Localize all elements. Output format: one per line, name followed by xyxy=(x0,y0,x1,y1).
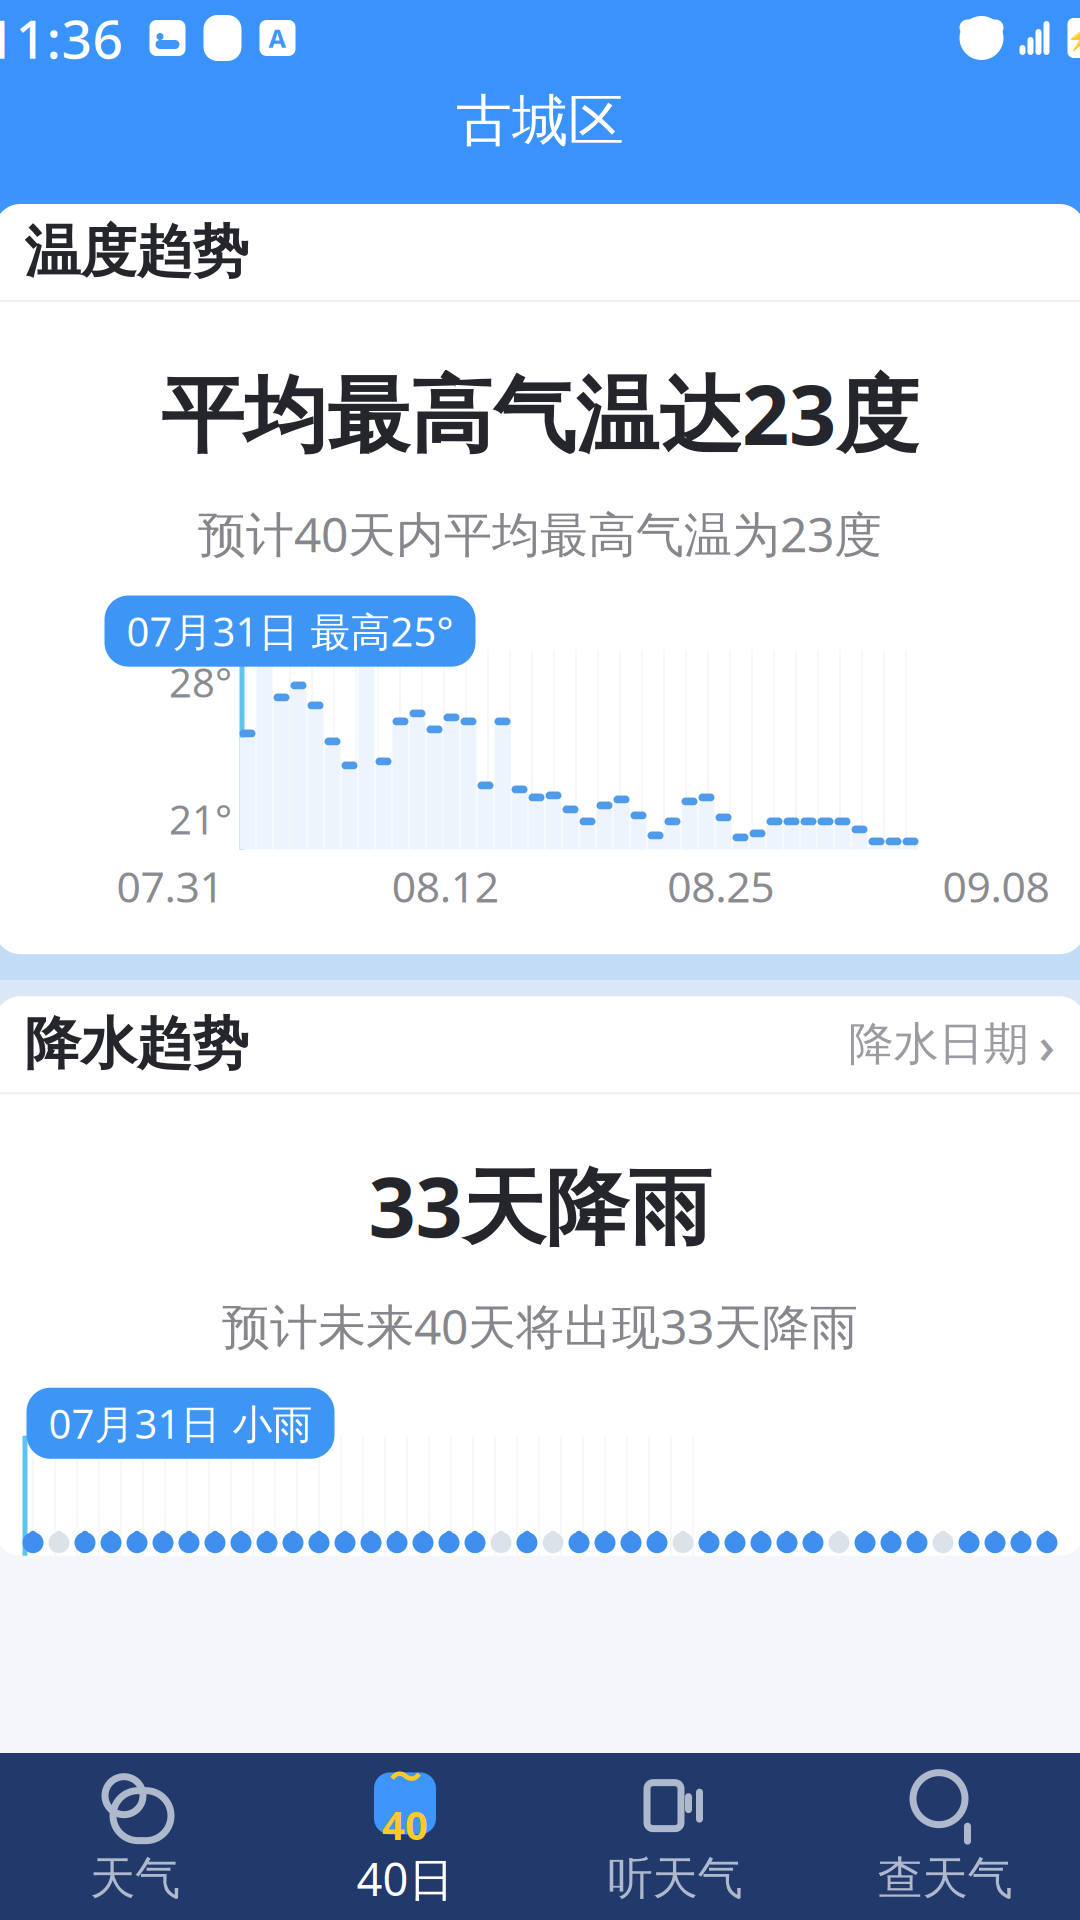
staticText: 09.08 xyxy=(942,857,1049,914)
staticText: 降水趋势 xyxy=(24,1010,248,1079)
staticText: 21° xyxy=(169,792,232,845)
staticText: 降水日期 xyxy=(848,1016,1028,1072)
staticText: 33天降雨 xyxy=(368,1150,711,1260)
staticText: 查天气 xyxy=(877,1851,1012,1906)
staticText: 07月31日 小雨 xyxy=(48,1397,312,1450)
staticText: 古城区 xyxy=(456,87,624,155)
staticText: 07月31日 最高25° xyxy=(126,604,453,658)
staticText: 08.25 xyxy=(667,857,774,914)
button[interactable]: 天气 xyxy=(0,1753,270,1920)
button[interactable]: 查天气 xyxy=(810,1753,1080,1920)
staticText: 温度趋势 xyxy=(24,218,248,286)
staticText: 预计40天内平均最高气温为23度 xyxy=(198,502,882,565)
staticText: 11:36 xyxy=(0,3,123,73)
staticText: 08.12 xyxy=(392,857,499,914)
button[interactable]: 听天气 xyxy=(540,1753,810,1920)
staticText: 预计未来40天将出现33天降雨 xyxy=(222,1294,858,1358)
staticText: 〜 xyxy=(389,1759,421,1798)
staticText: A xyxy=(268,21,286,55)
button[interactable]: 降水日期 xyxy=(834,1002,1055,1086)
staticText: 40日 xyxy=(356,1848,453,1909)
staticText: 40 xyxy=(382,1798,428,1851)
staticText: 天气 xyxy=(90,1851,180,1906)
button[interactable]: 〜 xyxy=(270,1750,540,1920)
staticText: › xyxy=(1038,1010,1055,1078)
staticText: 28° xyxy=(169,655,232,709)
staticText: 07.31 xyxy=(116,857,223,914)
staticText: 听天气 xyxy=(607,1851,742,1906)
staticText: ⚡ xyxy=(1065,24,1080,52)
staticText: 平均最高气温达23度 xyxy=(161,358,919,468)
